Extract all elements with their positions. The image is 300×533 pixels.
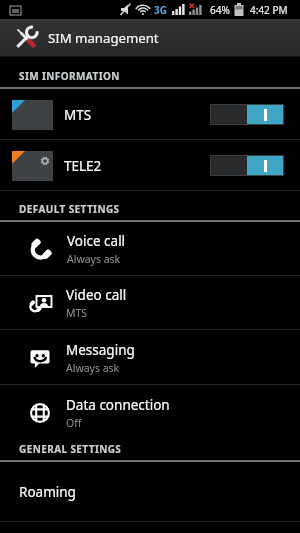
staticText: 4:42 PM: [250, 3, 288, 17]
button[interactable]: Messaging: [0, 330, 300, 385]
staticText: Off: [66, 416, 82, 430]
staticText: TELE2: [64, 157, 102, 175]
button[interactable]: Video call: [0, 276, 300, 330]
staticText: GENERAL SETTINGS: [19, 442, 122, 456]
button[interactable]: Roaming: [0, 462, 300, 522]
staticText: Video call: [66, 286, 127, 304]
staticText: MTS: [66, 306, 88, 320]
staticText: Roaming: [19, 483, 76, 501]
button[interactable]: Data connection: [0, 385, 300, 440]
staticText: 64%: [210, 3, 230, 17]
staticText: Messaging: [66, 341, 135, 359]
staticText: Always ask: [66, 361, 120, 375]
staticText: SIM INFORMATION: [19, 69, 120, 83]
button[interactable]: Voice call: [0, 222, 300, 276]
staticText: MTS: [64, 106, 92, 124]
button[interactable]: TELE2: [0, 140, 300, 191]
staticText: Voice call: [67, 232, 126, 250]
button[interactable]: MTS: [0, 89, 300, 140]
button[interactable]: SIM management: [0, 19, 300, 56]
staticText: 3G: [154, 3, 167, 17]
staticText: SIM management: [48, 29, 159, 47]
staticText: DEFAULT SETTINGS: [19, 202, 120, 216]
staticText: Always ask: [67, 252, 121, 266]
button[interactable]: [210, 155, 284, 176]
staticText: Data connection: [66, 396, 170, 414]
button[interactable]: [210, 104, 284, 125]
